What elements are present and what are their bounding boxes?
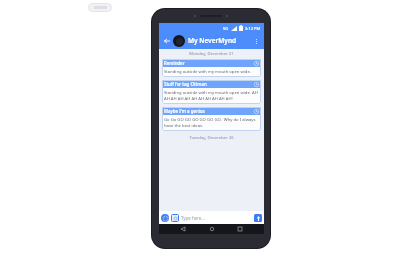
button[interactable]: Type here... <box>181 213 252 223</box>
button[interactable]: Back <box>178 224 188 234</box>
button[interactable]: Send <box>254 214 262 222</box>
staticText: Standing outside with my mouth open wide… <box>164 90 259 102</box>
staticText: 3:12 PM <box>245 26 261 31</box>
staticText: Go Go GO GO GO GO GO GO. Why do I always… <box>164 117 259 129</box>
staticText: Tuesday, December 26 <box>189 135 234 141</box>
button[interactable]: Back <box>162 36 172 46</box>
button[interactable]: Home <box>207 224 217 234</box>
button[interactable]: Reminder <box>162 59 261 77</box>
staticText: 5G <box>223 26 229 31</box>
button[interactable]: Emoji <box>161 214 169 222</box>
button[interactable]: Camera <box>171 214 179 222</box>
staticText: My NeverMynd <box>188 36 237 45</box>
staticText: Reminder <box>164 60 185 66</box>
button[interactable]: More options <box>251 36 261 46</box>
button[interactable]: Profile avatar <box>173 35 185 47</box>
button[interactable]: Stuff for tag Ottman <box>162 80 261 104</box>
staticText: Monday, December 21 <box>189 51 234 57</box>
staticText: Maybe I'm a genius <box>164 108 205 114</box>
staticText: Stuff for tag Ottman <box>164 81 207 87</box>
staticText: Standing outside with my mouth open wide… <box>164 69 251 75</box>
button[interactable]: Recent apps <box>235 224 245 234</box>
button[interactable]: Maybe I'm a genius <box>162 107 261 131</box>
staticText: Type here... <box>181 215 205 221</box>
button[interactable]: Home <box>88 3 112 12</box>
